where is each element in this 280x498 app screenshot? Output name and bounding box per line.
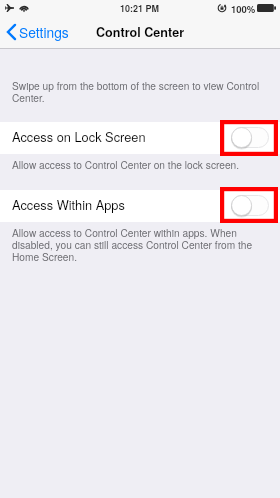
staticText: Allow access to Control Center within ap… [12, 225, 265, 263]
button[interactable]: Toggle switch, off [231, 127, 269, 149]
staticText: Access on Lock Screen [12, 127, 146, 145]
staticText: 100% [231, 2, 256, 16]
staticText: 10:21 PM [120, 2, 160, 15]
staticText: Swipe up from the bottom of the screen t… [12, 78, 265, 104]
button[interactable]: Settings [6, 22, 69, 42]
staticText: Allow access to Control Center on the lo… [12, 157, 240, 172]
button[interactable]: Access on Lock Screen [0, 122, 280, 154]
button[interactable]: Access Within Apps [0, 190, 280, 222]
staticText: Control Center [96, 23, 185, 41]
staticText: Settings [19, 22, 69, 42]
button[interactable]: Toggle switch, off [231, 195, 269, 217]
staticText: Access Within Apps [12, 195, 125, 213]
